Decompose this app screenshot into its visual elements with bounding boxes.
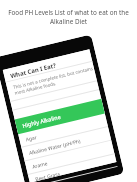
staticText: What Can I Eat? (10, 61, 57, 80)
staticText: Food PH Levels List of what to eat on th… (2, 8, 135, 26)
staticText: Highly Alkaline (21, 113, 62, 129)
staticText: Agar (25, 134, 38, 143)
button[interactable]: Alkaline Water (pH/Ph) (21, 127, 111, 161)
staticText: Beet Grass (35, 170, 61, 182)
staticText: Alkaline Water (pH/Ph) (28, 138, 81, 157)
button[interactable]: Highly Alkaline (15, 99, 105, 134)
button[interactable]: Agar (18, 113, 108, 148)
button[interactable]: Arame (25, 141, 115, 175)
staticText: This is not a complete list, but contain… (12, 65, 95, 96)
button[interactable]: Broccoli (31, 167, 119, 182)
staticText: Arame (31, 160, 49, 171)
button[interactable]: Beet Grass (28, 153, 118, 182)
